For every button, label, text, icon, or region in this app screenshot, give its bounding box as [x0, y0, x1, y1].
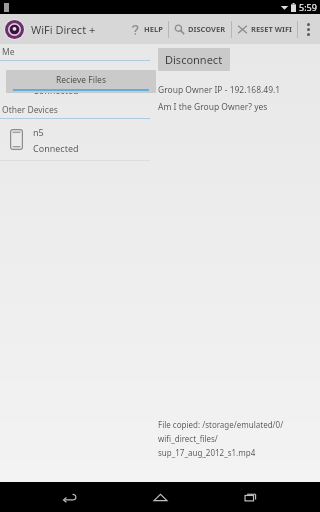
- staticText: DISCOVER: [188, 24, 226, 34]
- button[interactable]: Disconnect: [158, 48, 230, 71]
- staticText: Connected: [33, 142, 79, 154]
- button[interactable]: Recent apps: [229, 482, 273, 512]
- staticText: File copied: /storage/emulated/0/: [158, 419, 284, 430]
- staticText: n5: [33, 126, 44, 138]
- button[interactable]: Recieve Files: [6, 70, 156, 93]
- button[interactable]: HELP: [127, 14, 166, 44]
- staticText: Am I the Group Owner? yes: [158, 101, 268, 113]
- button[interactable]: Home: [138, 482, 182, 512]
- button[interactable]: DISCOVER: [171, 14, 229, 44]
- button[interactable]: n7: [0, 61, 150, 102]
- staticText: Connected: [33, 84, 79, 96]
- staticText: RESET WIFI: [251, 24, 292, 34]
- staticText: Recieve Files: [56, 74, 106, 86]
- staticText: wifi_direct_files/: [158, 433, 218, 444]
- button[interactable]: RESET WIFI: [234, 14, 295, 44]
- staticText: sup_17_aug_2012_s1.mp4: [158, 447, 256, 458]
- staticText: Disconnect: [165, 52, 223, 67]
- button[interactable]: More options: [300, 14, 316, 44]
- staticText: WiFi Direct +: [31, 22, 96, 37]
- staticText: Other Devices: [2, 104, 58, 116]
- staticText: Me: [2, 46, 15, 58]
- button[interactable]: Back: [47, 482, 91, 512]
- staticText: 5:59: [299, 1, 317, 13]
- staticText: n7: [33, 68, 44, 80]
- button[interactable]: n5: [0, 119, 150, 160]
- staticText: HELP: [144, 24, 163, 34]
- staticText: Group Owner IP - 192.168.49.1: [158, 84, 281, 96]
